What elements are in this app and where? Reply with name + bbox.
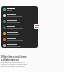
button[interactable]: Reactions bbox=[34, 24, 40, 29]
button[interactable]: Workspace bbox=[3, 8, 6, 11]
staticText: collaboration bbox=[1, 58, 19, 62]
button[interactable] bbox=[1, 36, 38, 42]
button[interactable] bbox=[1, 24, 38, 30]
staticText: Bring the team together in bbox=[1, 61, 25, 64]
button[interactable] bbox=[1, 30, 38, 36]
staticText: Effortless real-time bbox=[1, 55, 27, 59]
button[interactable] bbox=[1, 18, 38, 24]
button[interactable] bbox=[1, 42, 38, 48]
staticText: instant updates, anywhere. bbox=[1, 65, 26, 68]
staticText: shared channels, threads and bbox=[1, 63, 28, 66]
button[interactable] bbox=[1, 12, 38, 18]
